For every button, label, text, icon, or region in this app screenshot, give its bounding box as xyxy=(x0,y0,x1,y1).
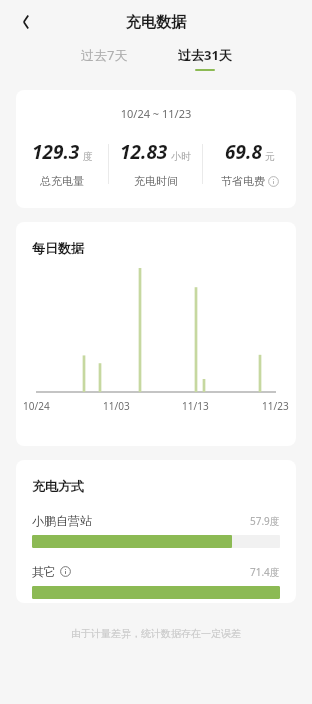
button[interactable]: 过去31天 xyxy=(170,44,240,73)
button[interactable]: 过去7天 xyxy=(73,44,136,73)
staticText: 11/03 xyxy=(103,399,130,413)
button[interactable]: Info xyxy=(268,176,279,187)
staticText: 充电方式 xyxy=(32,478,84,494)
staticText: 71.4度 xyxy=(250,565,280,579)
staticText: 过去7天 xyxy=(81,46,128,64)
staticText: 元 xyxy=(265,150,275,163)
staticText: 度 xyxy=(83,150,93,163)
staticText: 10/24 xyxy=(23,399,50,413)
staticText: 小鹏自营站 xyxy=(32,513,92,528)
staticText: 11/13 xyxy=(182,399,209,413)
staticText: 10/24 ~ 11/23 xyxy=(16,106,296,121)
staticText: 11/23 xyxy=(262,399,289,413)
staticText: 总充电量 xyxy=(40,174,84,188)
staticText: 57.9度 xyxy=(250,514,280,528)
staticText: 充电数据 xyxy=(126,13,186,32)
button[interactable]: Info xyxy=(60,566,71,577)
staticText: 每日数据 xyxy=(32,240,84,256)
staticText: 小时 xyxy=(171,150,191,163)
staticText: 节省电费 xyxy=(221,174,265,188)
staticText: 由于计量差异，统计数据存在一定误差 xyxy=(0,627,312,640)
staticText: 其它 xyxy=(32,564,56,579)
staticText: 过去31天 xyxy=(178,46,232,64)
staticText: 12.83 xyxy=(120,139,168,165)
staticText: 129.3 xyxy=(32,139,80,165)
staticText: 充电时间 xyxy=(134,174,178,188)
staticText: 69.8 xyxy=(225,139,262,165)
button[interactable]: Back xyxy=(8,4,44,40)
